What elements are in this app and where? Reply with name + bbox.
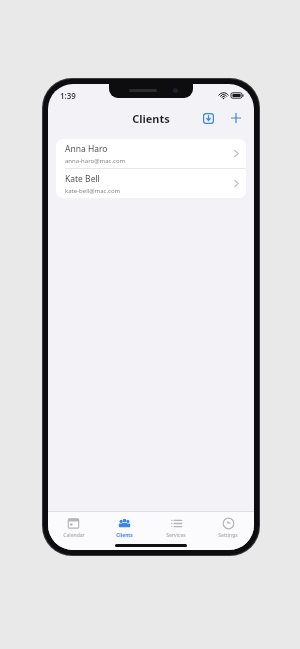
staticText: Services: [166, 532, 186, 539]
staticText: 1:39: [60, 90, 76, 101]
button[interactable]: Clients: [99, 516, 150, 540]
staticText: anna-haro@mac.com: [65, 157, 126, 165]
staticText: Clients: [116, 532, 133, 539]
staticText: Calendar: [63, 532, 85, 539]
button[interactable]: Settings: [202, 516, 254, 540]
staticText: Anna Haro: [65, 143, 108, 155]
staticText: Clients: [132, 111, 170, 126]
staticText: Settings: [218, 532, 238, 539]
staticText: kate-bell@mac.com: [65, 187, 121, 195]
button[interactable]: Add client: [226, 108, 246, 128]
button[interactable]: Kate Bell: [56, 169, 246, 198]
staticText: Kate Bell: [65, 173, 100, 185]
button[interactable]: Anna Haro: [56, 139, 246, 168]
button[interactable]: Services: [150, 516, 202, 540]
button[interactable]: Calendar: [48, 516, 99, 540]
button[interactable]: Import clients: [198, 108, 218, 128]
